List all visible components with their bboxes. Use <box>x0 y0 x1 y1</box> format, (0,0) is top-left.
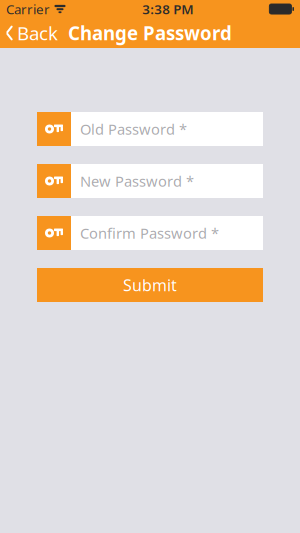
staticText: Old Password * <box>80 119 187 139</box>
button[interactable]: New Password * <box>37 164 263 198</box>
staticText: 3:38 PM <box>142 0 193 18</box>
staticText: Change Password <box>68 21 232 45</box>
button[interactable]: Old Password * <box>37 112 263 146</box>
staticText: Back <box>17 21 58 45</box>
button[interactable]: Back <box>0 18 63 48</box>
staticText: Confirm Password * <box>80 223 219 243</box>
button[interactable]: Confirm Password * <box>37 216 263 250</box>
staticText: New Password * <box>80 171 194 191</box>
staticText: Submit <box>123 274 177 296</box>
staticText: Carrier <box>6 0 50 18</box>
button[interactable]: Submit <box>37 268 263 302</box>
